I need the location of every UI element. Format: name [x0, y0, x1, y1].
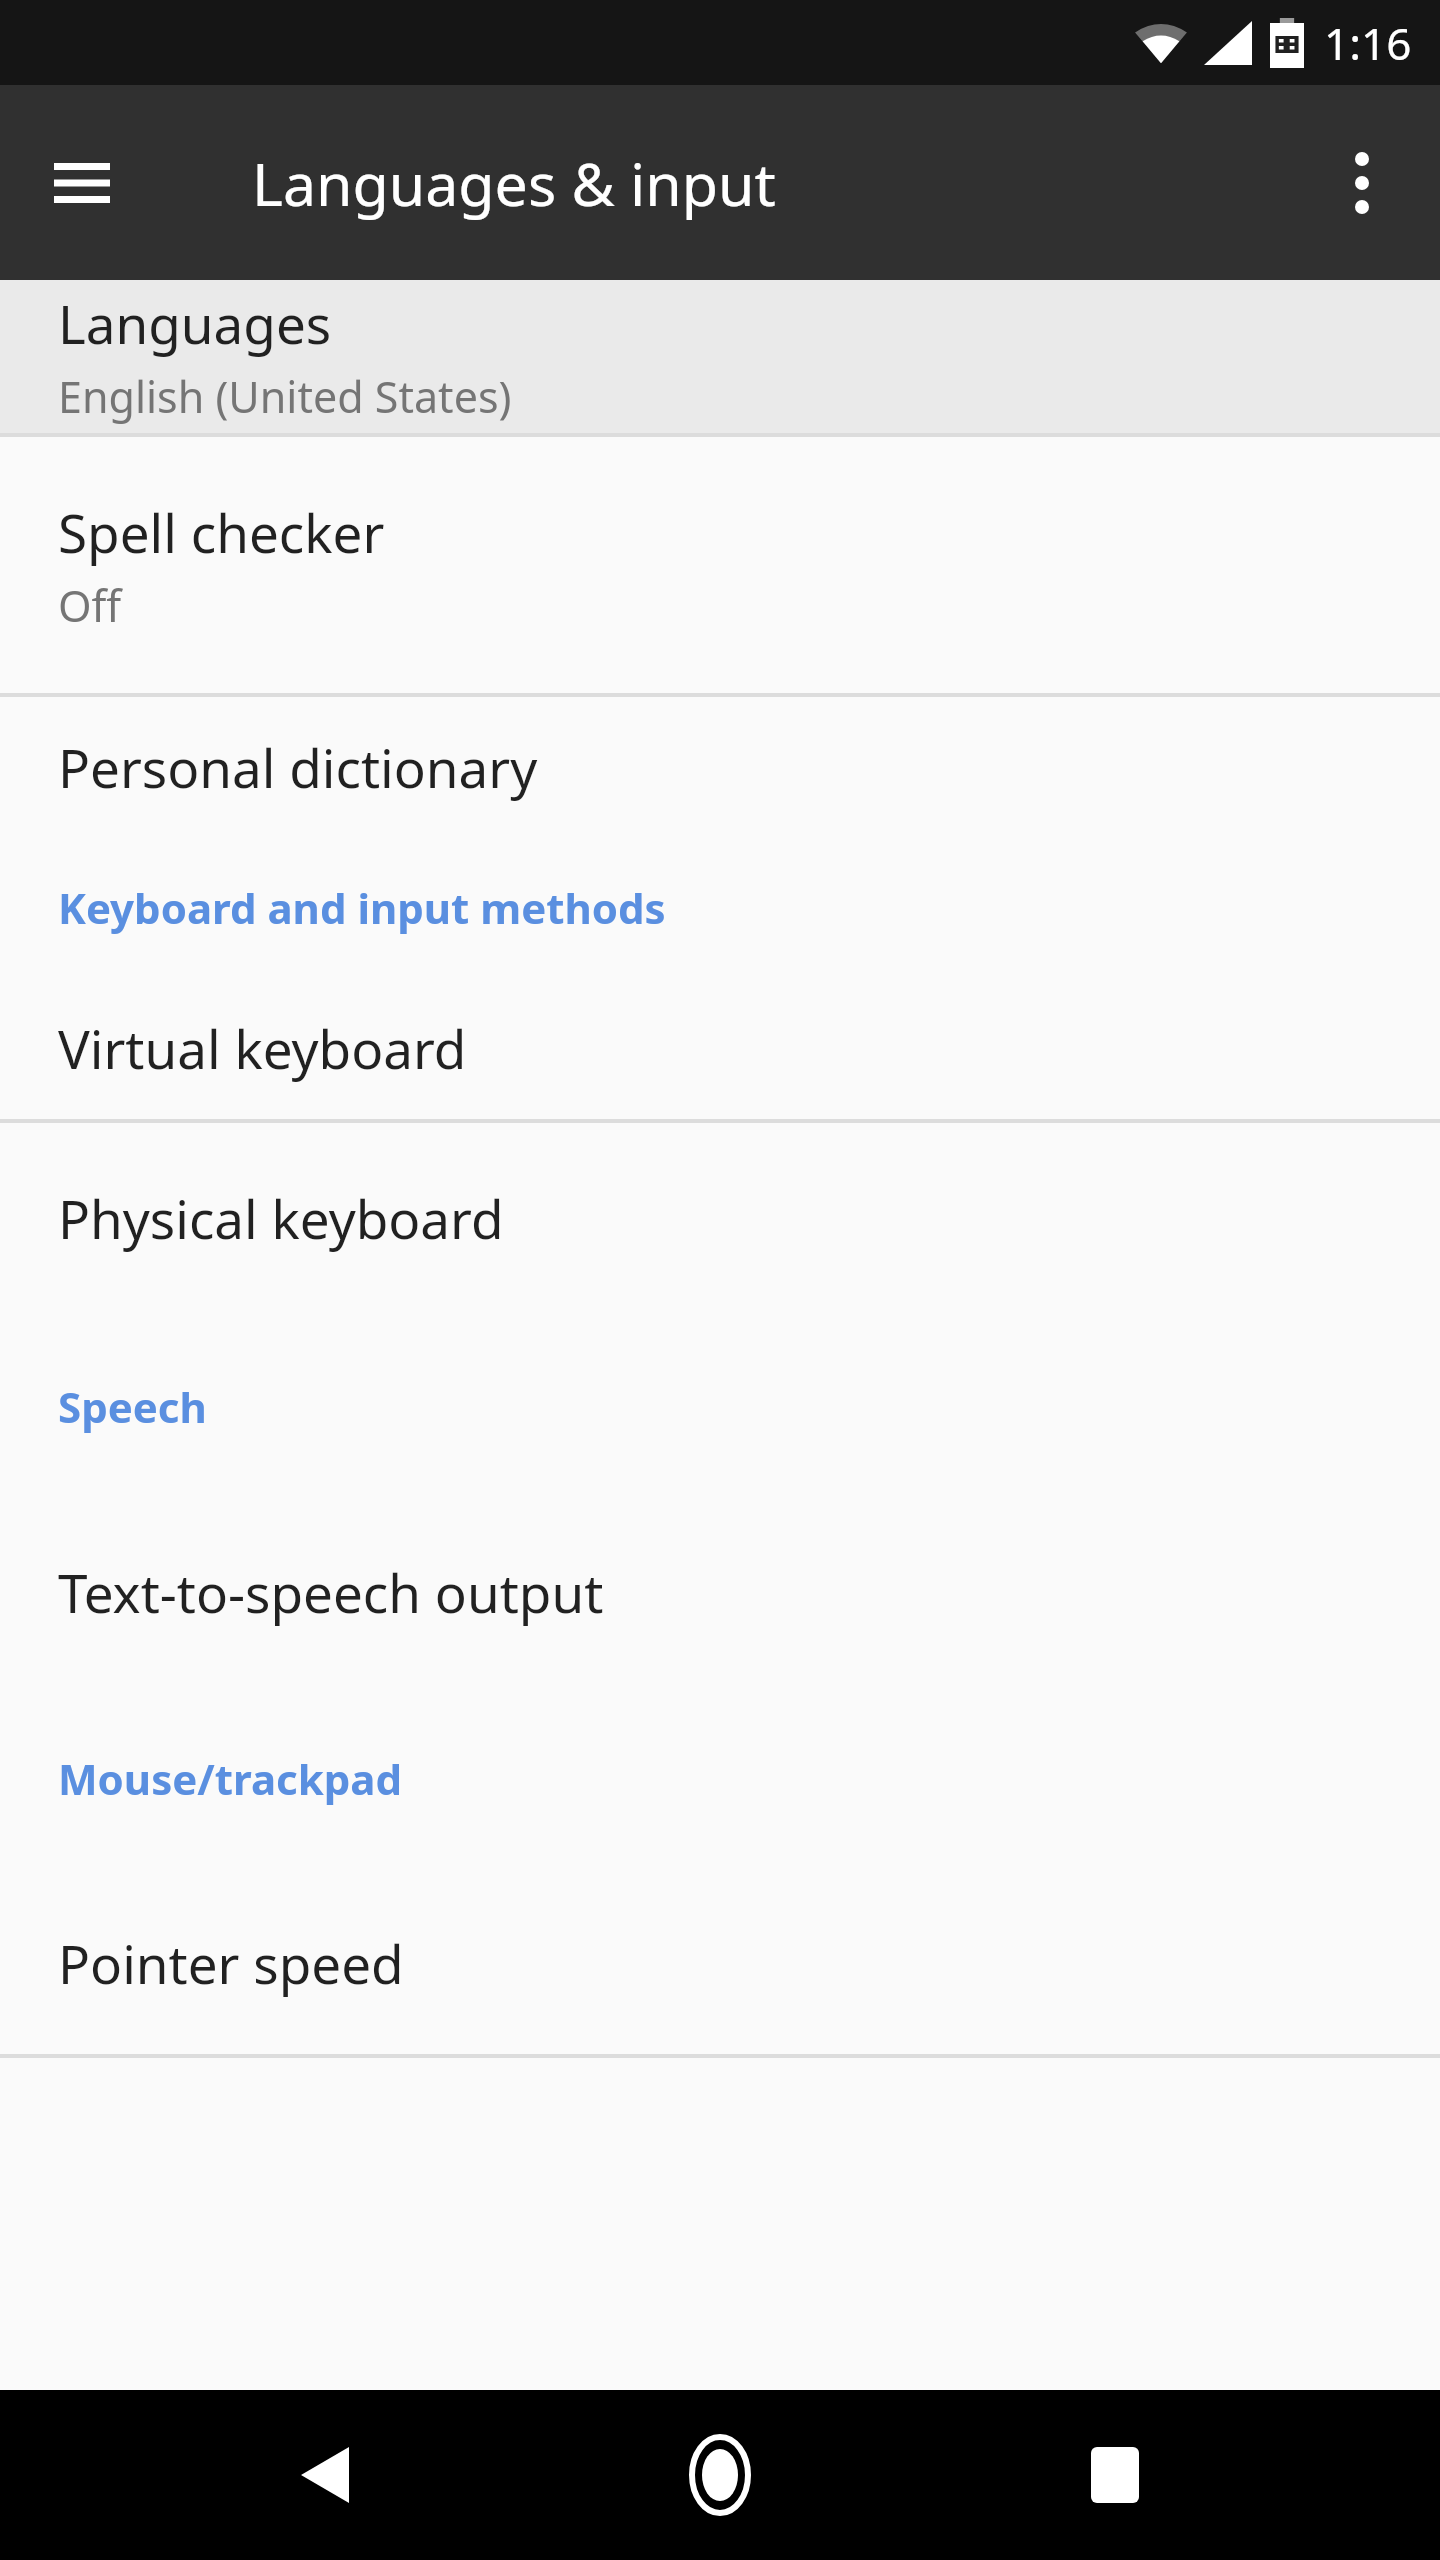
staticText: Off — [58, 576, 122, 635]
staticText: 1:16 — [1324, 13, 1412, 73]
staticText: Spell checker — [58, 496, 385, 568]
button[interactable]: Recent apps — [1045, 2405, 1185, 2545]
button[interactable]: More options — [1314, 135, 1410, 231]
staticText: Personal dictionary — [58, 731, 538, 803]
button[interactable]: Virtual keyboard — [0, 977, 1440, 1119]
staticText: Languages & input — [252, 143, 776, 223]
staticText: Mouse/trackpad — [58, 1750, 403, 1807]
button[interactable]: Home — [650, 2405, 790, 2545]
button[interactable]: Languages — [0, 280, 1440, 433]
button[interactable]: Text-to-speech output — [0, 1499, 1440, 1685]
staticText: Virtual keyboard — [58, 1012, 467, 1084]
button[interactable]: Back — [255, 2405, 395, 2545]
staticText: Text-to-speech output — [58, 1556, 604, 1628]
button[interactable]: Physical keyboard — [0, 1123, 1440, 1313]
staticText: English (United States) — [58, 367, 512, 426]
button[interactable]: Pointer speed — [0, 1871, 1440, 2054]
button[interactable]: Spell checker — [0, 437, 1440, 693]
button[interactable]: Personal dictionary — [0, 697, 1440, 837]
staticText: Keyboard and input methods — [58, 879, 666, 936]
staticText: Pointer speed — [58, 1927, 404, 1999]
staticText: Speech — [58, 1378, 207, 1435]
staticText: Languages — [58, 287, 332, 359]
staticText: Physical keyboard — [58, 1182, 504, 1254]
button[interactable]: Navigation menu — [34, 135, 130, 231]
